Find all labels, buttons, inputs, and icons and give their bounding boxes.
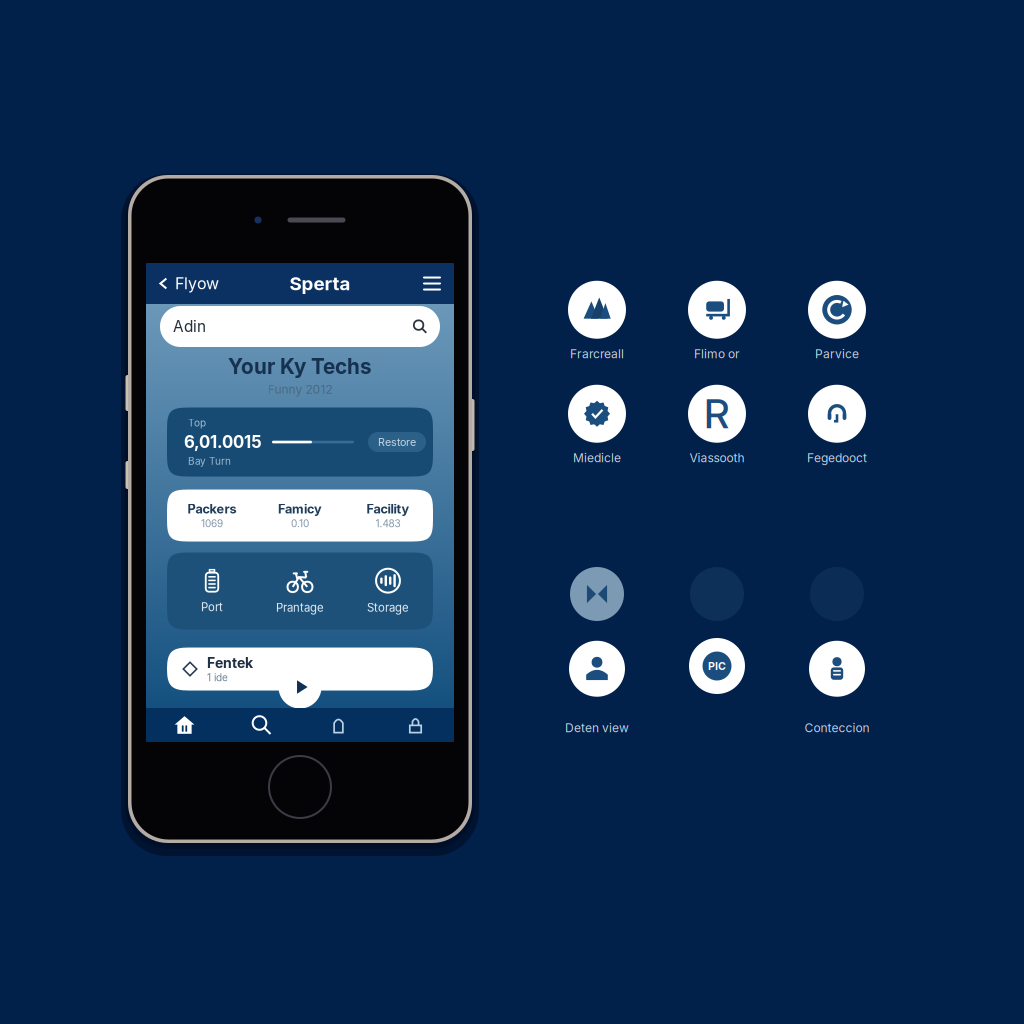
staticText: Adin [173, 317, 206, 336]
staticText: Frarcreall [570, 347, 624, 361]
staticText: Viassooth [689, 451, 744, 465]
button[interactable]: Search [223, 708, 300, 742]
button[interactable]: Saved [300, 708, 377, 742]
button[interactable]: Storage [344, 562, 432, 620]
staticText: Miedicle [573, 451, 621, 465]
button[interactable]: Fentek [167, 647, 433, 690]
button[interactable]: Parvice [777, 281, 897, 361]
button[interactable]: Flyow [146, 263, 227, 304]
staticText: 1069 [201, 518, 223, 530]
button[interactable]: Frarcreall [537, 281, 657, 361]
button[interactable]: Prantage [256, 562, 344, 620]
staticText: Fegedooct [807, 451, 867, 465]
button[interactable]: Home [146, 708, 223, 742]
staticText: 1.483 [375, 518, 400, 530]
button[interactable]: Menu [413, 263, 454, 304]
button[interactable]: Bookmark [537, 567, 657, 621]
button[interactable]: Viassooth [657, 385, 777, 465]
staticText: 1 ide [207, 671, 228, 683]
staticText: Prantage [276, 601, 324, 614]
staticText: Fentek [207, 654, 253, 671]
button[interactable]: Adin [160, 306, 440, 347]
button[interactable]: Fegedooct [777, 385, 897, 465]
button[interactable]: More [777, 567, 897, 621]
staticText: Port [201, 600, 223, 614]
staticText: Deten view [565, 721, 629, 735]
button[interactable]: Deten view [537, 641, 657, 735]
button[interactable]: Play [278, 665, 321, 708]
staticText: Sperta [289, 272, 350, 295]
staticText: R [704, 389, 730, 438]
button[interactable]: Flimo or [657, 281, 777, 361]
staticText: Funny 2012 [267, 382, 332, 396]
staticText: Restore [378, 436, 416, 448]
staticText: Bay Turn [188, 455, 231, 467]
staticText: Storage [367, 601, 409, 614]
staticText: Parvice [815, 347, 859, 361]
staticText: Packers [187, 501, 236, 517]
staticText: Flyow [175, 274, 219, 293]
staticText: Famicy [278, 501, 322, 517]
staticText: 6,01.0015 [184, 432, 262, 452]
staticText: 0.10 [291, 518, 309, 530]
staticText: Flimo or [694, 347, 740, 361]
button[interactable]: PIC [657, 638, 777, 694]
button[interactable]: More [657, 567, 777, 621]
staticText: Top [188, 417, 206, 429]
button[interactable]: Account [377, 708, 454, 742]
button[interactable]: Port [168, 562, 256, 620]
staticText: Your Ky Techs [228, 354, 372, 379]
staticText: PIC [708, 659, 726, 672]
button[interactable]: Miedicle [537, 385, 657, 465]
button[interactable]: Conteccion [777, 641, 897, 735]
staticText: Facility [366, 501, 409, 517]
button[interactable]: Restore [368, 432, 426, 452]
staticText: Conteccion [804, 721, 869, 735]
